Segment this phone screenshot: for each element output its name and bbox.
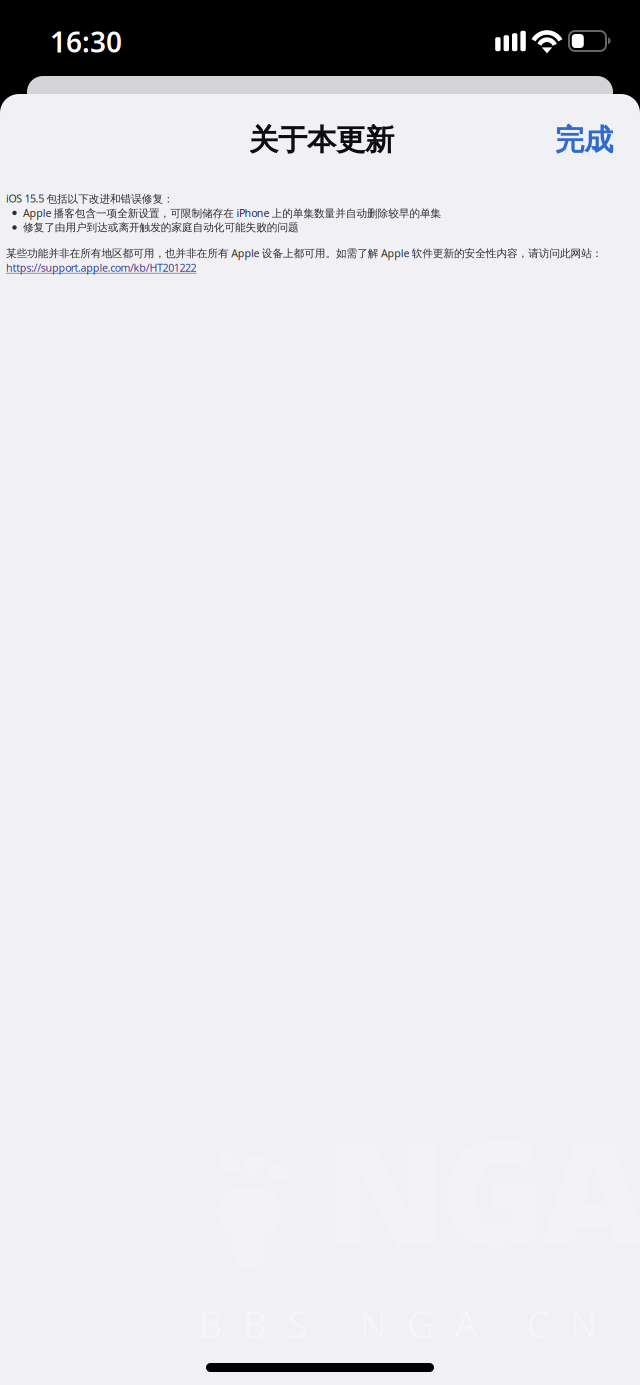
- staticText: https://support.apple.com/kb/HT201222: [6, 261, 197, 275]
- staticText: 修复了由用户到达或离开触发的家庭自动化可能失败的问题: [23, 221, 299, 234]
- button[interactable]: https://support.apple.com/kb/HT201222: [6, 260, 197, 275]
- staticText: 关于本更新: [249, 122, 394, 158]
- staticText: 完成: [555, 122, 613, 158]
- staticText: iOS 15.5 包括以下改进和错误修复：: [6, 191, 174, 205]
- staticText: Apple 播客包含一项全新设置，可限制储存在 iPhone 上的单集数量并自动…: [23, 206, 442, 220]
- staticText: 某些功能并非在所有地区都可用，也并非在所有 Apple 设备上都可用。如需了解 …: [6, 246, 603, 260]
- staticText: 16:30: [50, 23, 122, 60]
- button[interactable]: 完成: [544, 114, 624, 166]
